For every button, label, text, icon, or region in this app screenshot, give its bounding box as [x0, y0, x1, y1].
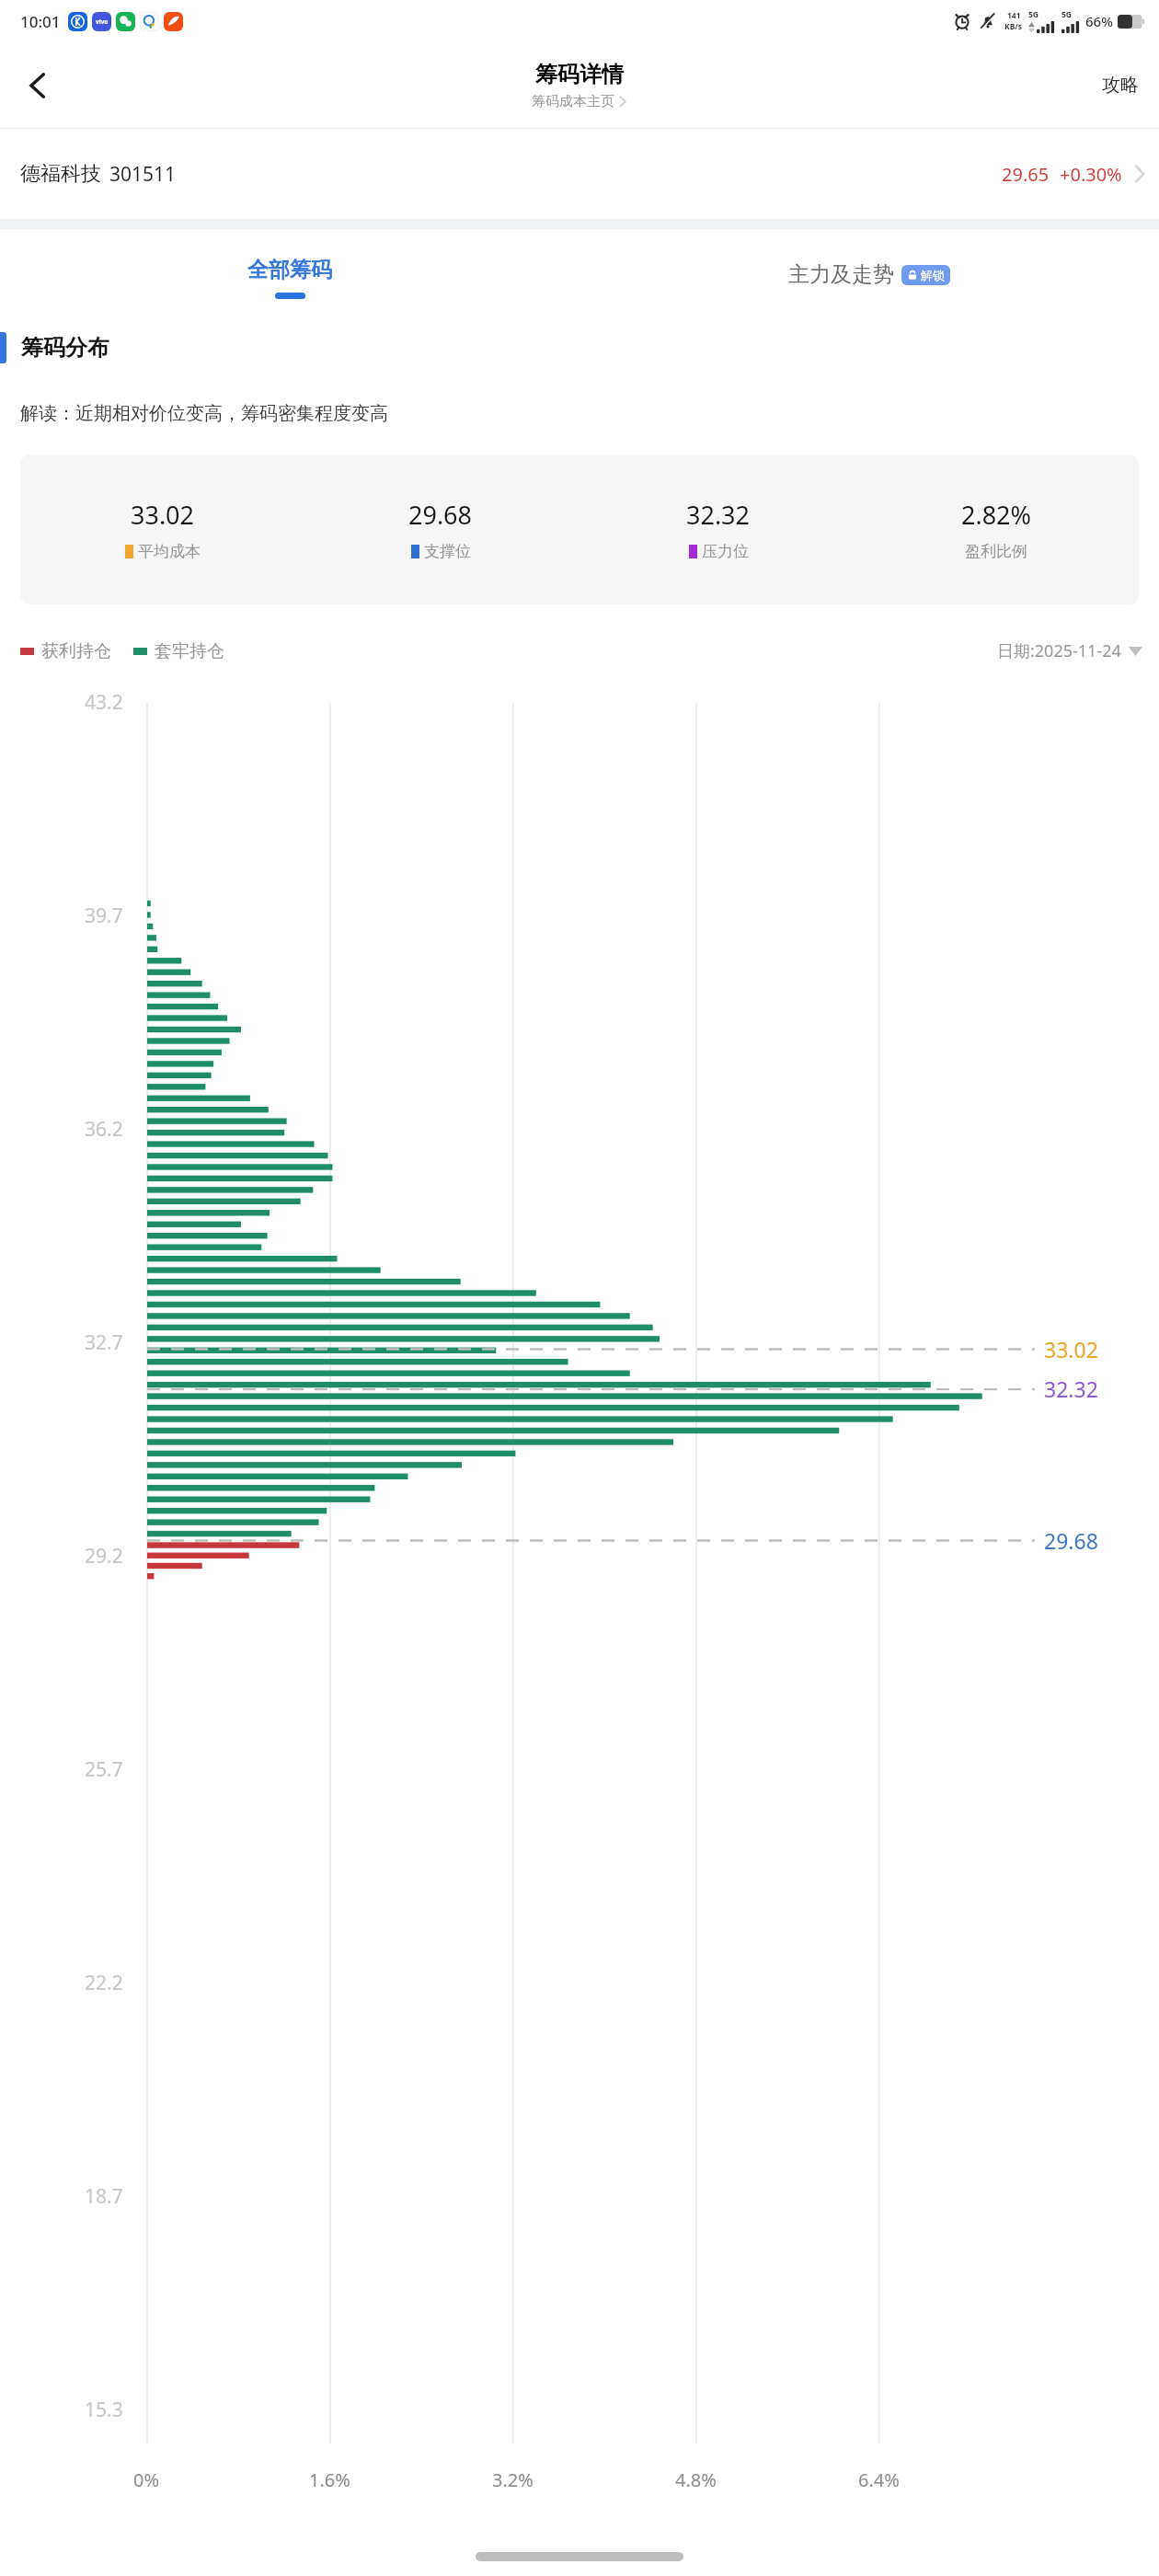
staticText: 压力位 [702, 542, 749, 561]
staticText: 3.2% [492, 2467, 534, 2492]
staticText: vivo [96, 17, 109, 26]
button[interactable]: 主力及走势 [579, 229, 1159, 319]
staticText: 33.02 [1044, 1335, 1098, 1363]
staticText: 盈利比例 [965, 542, 1027, 561]
staticText: 29.68 [1044, 1526, 1098, 1555]
staticText: 解锁 [921, 268, 945, 282]
staticText: +0.30% [1060, 162, 1122, 187]
staticText: 18.7 [85, 2183, 123, 2210]
staticText: 5G [1061, 9, 1073, 20]
staticText: 6.4% [858, 2467, 900, 2492]
staticText: 10:01 [20, 11, 61, 32]
button[interactable]: 筹码成本主页 [532, 93, 627, 110]
staticText: 筹码成本主页 [532, 93, 614, 110]
staticText: 套牢持仓 [155, 640, 224, 662]
button[interactable]: 德福科技 [0, 129, 1159, 219]
staticText: 25.7 [85, 1756, 123, 1783]
staticText: 15.3 [85, 2397, 123, 2423]
staticText: 支撑位 [424, 542, 471, 561]
staticText: 筹码详情 [535, 61, 624, 88]
button[interactable]: 全部筹码 [0, 229, 579, 319]
staticText: 301511 [109, 161, 177, 188]
staticText: 22.2 [85, 1970, 123, 1996]
staticText: 解读：近期相对价位变高，筹码密集程度变高 [20, 402, 388, 425]
staticText: 32.7 [85, 1329, 123, 1356]
staticText: 5G [1028, 9, 1039, 20]
staticText: 141 [1007, 10, 1021, 21]
staticText: 获利持仓 [41, 640, 111, 662]
staticText: 2.82% [961, 498, 1032, 532]
staticText: 攻略 [1102, 74, 1139, 97]
button[interactable]: Back [7, 55, 68, 116]
staticText: 日期:2025-11-24 [997, 639, 1121, 662]
staticText: 德福科技 [20, 161, 101, 187]
staticText: 32.32 [1044, 1374, 1098, 1403]
button[interactable]: 攻略 [1089, 63, 1152, 108]
staticText: 36.2 [85, 1116, 123, 1143]
staticText: 筹码分布 [21, 334, 109, 362]
staticText: 32.32 [686, 498, 751, 532]
staticText: 33.02 [131, 498, 195, 532]
staticText: KB/s [1004, 21, 1023, 32]
staticText: 0% [133, 2467, 160, 2492]
staticText: 29.68 [408, 498, 473, 532]
staticText: 39.7 [85, 903, 123, 929]
staticText: 平均成本 [138, 542, 201, 561]
staticText: 全部筹码 [247, 257, 332, 283]
staticText: 29.65 [1002, 162, 1050, 187]
staticText: 4.8% [675, 2467, 717, 2492]
staticText: 66% [1085, 12, 1113, 30]
button[interactable]: 日期:2025-11-24 [997, 639, 1142, 662]
staticText: 43.2 [85, 689, 123, 716]
staticText: 主力及走势 [788, 261, 894, 288]
staticText: 1.6% [309, 2467, 350, 2492]
staticText: 29.2 [85, 1543, 123, 1570]
